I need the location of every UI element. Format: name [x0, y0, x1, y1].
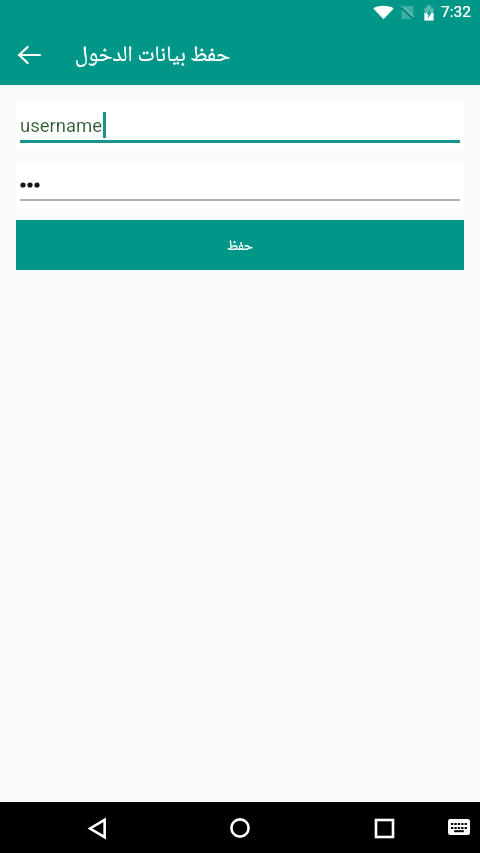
- button[interactable]: Recent apps: [360, 804, 408, 852]
- staticText: حفظ: [227, 234, 254, 259]
- staticText: username: [20, 115, 103, 137]
- button[interactable]: Home: [216, 804, 264, 852]
- button[interactable]: Back: [73, 804, 121, 852]
- button[interactable]: حفظ: [16, 220, 464, 270]
- staticText: حفظ بيانات الدخول: [75, 37, 231, 74]
- button[interactable]: Change keyboard: [441, 809, 477, 845]
- button[interactable]: Navigate up: [5, 31, 53, 79]
- button[interactable]: [16, 161, 464, 209]
- staticText: 7:32: [441, 3, 471, 21]
- button[interactable]: username: [16, 102, 464, 150]
